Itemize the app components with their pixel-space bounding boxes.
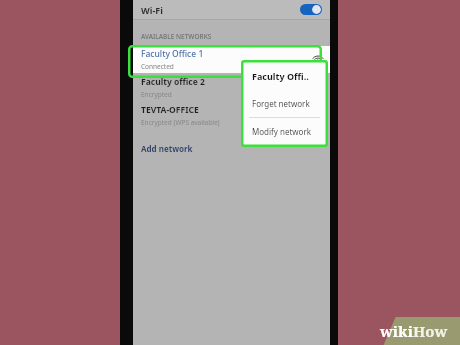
button[interactable]: Modify network: [243, 118, 326, 145]
staticText: Encrypted (WPS available): [141, 118, 220, 127]
staticText: AVAILABLE NETWORKS: [141, 32, 212, 41]
staticText: Forget network: [252, 98, 310, 109]
staticText: Faculty Offi..: [252, 70, 309, 82]
staticText: Connected: [141, 62, 174, 71]
staticText: How: [413, 321, 448, 341]
staticText: Encrypted: [141, 90, 172, 99]
other: Secured Wi-Fi signal: [313, 54, 324, 65]
staticText: Add network: [141, 143, 193, 154]
staticText: Faculty office 2: [141, 76, 205, 88]
button[interactable]: TEVTA-OFFICE: [133, 101, 330, 129]
staticText: Wi-Fi: [141, 4, 163, 16]
button[interactable]: Faculty Offi..: [243, 62, 326, 89]
staticText: TEVTA-OFFICE: [141, 104, 199, 116]
staticText: Faculty Office 1: [141, 48, 204, 60]
staticText: Modify network: [252, 126, 312, 137]
button[interactable]: Forget network: [243, 89, 326, 117]
button[interactable]: Faculty Office 1: [133, 46, 330, 73]
staticText: wiki: [380, 321, 413, 341]
button[interactable]: Add network: [133, 137, 330, 159]
button[interactable]: Faculty office 2: [133, 73, 330, 101]
button[interactable]: Wi-Fi: [133, 0, 330, 19]
button[interactable]: Wi-Fi toggle: [300, 4, 322, 15]
